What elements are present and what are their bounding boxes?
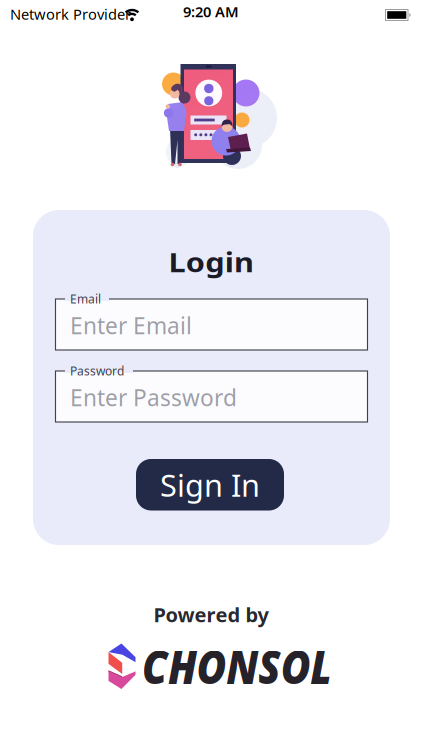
button[interactable]: Sign In — [136, 459, 284, 510]
staticText: Enter Email — [70, 310, 192, 341]
staticText: Enter Password — [70, 382, 237, 413]
staticText: Password — [70, 363, 124, 379]
button[interactable]: Email — [55, 293, 368, 351]
staticText: Powered by — [153, 601, 268, 628]
staticText: 9:20 AM — [183, 2, 239, 21]
staticText: CHONSOL — [142, 636, 354, 697]
staticText: Sign In — [160, 464, 260, 505]
button[interactable]: Password — [55, 365, 368, 423]
staticText: Login — [174, 244, 248, 280]
staticText: Email — [70, 291, 101, 307]
staticText: Network Provider — [10, 4, 131, 24]
